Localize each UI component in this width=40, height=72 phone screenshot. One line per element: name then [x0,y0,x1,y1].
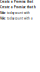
staticText: Make today count with [0,11,30,15]
staticText: Create a Promise that h [0,5,36,9]
staticText: Make today count with a [0,17,32,20]
staticText: Create a Promise that [0,0,33,3]
